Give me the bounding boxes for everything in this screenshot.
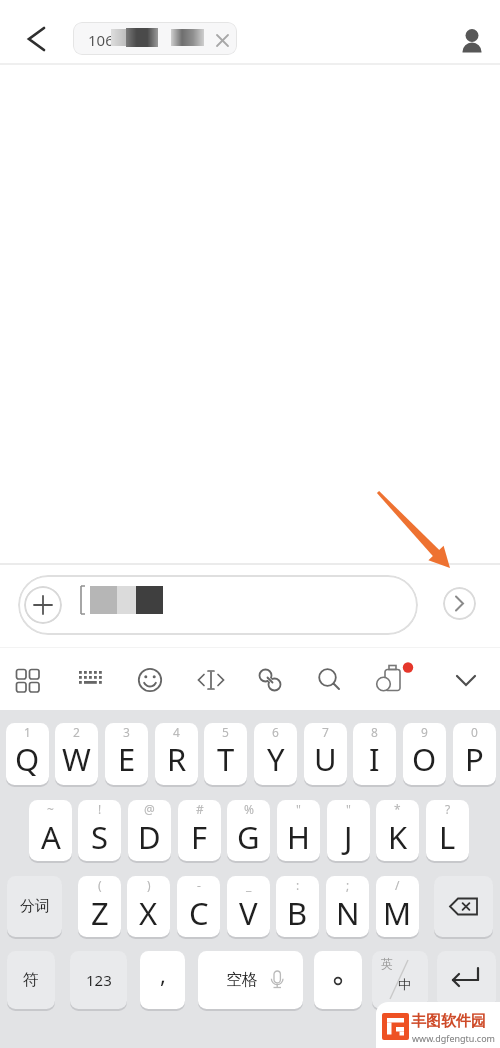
staticText: ( bbox=[98, 877, 102, 893]
button[interactable]: 123 bbox=[70, 951, 127, 1009]
button[interactable]: 8 bbox=[353, 723, 396, 785]
staticText: 符 bbox=[23, 970, 39, 990]
staticText: 2 bbox=[73, 724, 80, 740]
staticText: ~ bbox=[47, 801, 54, 817]
staticText: J bbox=[344, 816, 353, 858]
button[interactable]: # bbox=[178, 800, 221, 861]
staticText: 106 bbox=[88, 30, 114, 50]
button[interactable]: - bbox=[177, 876, 220, 937]
staticText: L bbox=[439, 816, 456, 858]
button[interactable] bbox=[309, 660, 349, 700]
button[interactable]: ! bbox=[78, 800, 121, 861]
button[interactable] bbox=[14, 660, 54, 700]
button[interactable] bbox=[24, 586, 62, 624]
button[interactable]: 7 bbox=[304, 723, 347, 785]
staticText: D bbox=[138, 816, 161, 858]
staticText: M bbox=[383, 892, 412, 934]
staticText: R bbox=[167, 738, 187, 780]
button[interactable] bbox=[443, 587, 476, 620]
button[interactable]: , bbox=[140, 951, 185, 1009]
button[interactable] bbox=[191, 660, 231, 700]
staticText: 1 bbox=[24, 724, 31, 740]
button[interactable]: 英 bbox=[372, 951, 428, 1009]
staticText: 丰图软件园 bbox=[411, 1012, 486, 1031]
button[interactable]: * bbox=[376, 800, 419, 861]
button[interactable] bbox=[18, 575, 418, 635]
staticText: F bbox=[191, 816, 208, 858]
staticText: S bbox=[91, 816, 109, 858]
button[interactable]: 6 bbox=[254, 723, 297, 785]
button[interactable]: ~ bbox=[29, 800, 72, 861]
button[interactable]: 0 bbox=[453, 723, 496, 785]
staticText: @ bbox=[144, 801, 155, 817]
staticText: " bbox=[296, 801, 301, 817]
button[interactable]: _ bbox=[227, 876, 270, 937]
button[interactable]: 3 bbox=[105, 723, 148, 785]
staticText: C bbox=[189, 892, 209, 934]
button[interactable]: 1 bbox=[6, 723, 49, 785]
staticText: Q bbox=[15, 738, 40, 780]
staticText: 5 bbox=[222, 724, 229, 740]
button[interactable]: ) bbox=[127, 876, 170, 937]
staticText: X bbox=[139, 892, 158, 934]
button[interactable]: 符 bbox=[7, 951, 55, 1009]
staticText: 英 bbox=[381, 956, 393, 971]
staticText: ) bbox=[147, 877, 151, 893]
button[interactable] bbox=[452, 16, 492, 56]
staticText: P bbox=[465, 738, 484, 780]
staticText: 123 bbox=[86, 970, 112, 990]
button[interactable]: 空格 bbox=[198, 951, 303, 1009]
staticText: W bbox=[62, 738, 91, 780]
staticText: 6 bbox=[272, 724, 279, 740]
staticText: ! bbox=[98, 801, 102, 817]
staticText: Y bbox=[267, 738, 285, 780]
staticText: Z bbox=[91, 892, 109, 934]
button[interactable] bbox=[314, 951, 362, 1009]
button[interactable]: 4 bbox=[155, 723, 198, 785]
button[interactable]: ; bbox=[326, 876, 369, 937]
staticText: " bbox=[346, 801, 351, 817]
button[interactable] bbox=[250, 660, 290, 700]
button[interactable]: @ bbox=[128, 800, 171, 861]
staticText: N bbox=[336, 892, 360, 934]
button[interactable] bbox=[71, 660, 111, 700]
staticText: V bbox=[239, 892, 258, 934]
staticText: 8 bbox=[371, 724, 378, 740]
button[interactable] bbox=[437, 951, 496, 1009]
staticText: ; bbox=[346, 877, 350, 893]
staticText: _ bbox=[246, 877, 252, 893]
button[interactable]: % bbox=[227, 800, 270, 861]
staticText: , bbox=[160, 959, 166, 989]
button[interactable]: 5 bbox=[204, 723, 247, 785]
staticText: - bbox=[197, 877, 201, 893]
staticText: G bbox=[237, 816, 260, 858]
staticText: 7 bbox=[322, 724, 329, 740]
staticText: / bbox=[395, 877, 400, 893]
staticText: T bbox=[217, 738, 235, 780]
staticText: U bbox=[314, 738, 337, 780]
staticText: www.dgfengtu.com bbox=[412, 1032, 496, 1044]
staticText: 3 bbox=[123, 724, 130, 740]
button[interactable] bbox=[130, 660, 170, 700]
button[interactable]: 9 bbox=[403, 723, 446, 785]
button[interactable] bbox=[374, 660, 414, 700]
button[interactable] bbox=[434, 876, 493, 937]
button[interactable]: ( bbox=[78, 876, 121, 937]
button[interactable]: / bbox=[376, 876, 419, 937]
staticText: 0 bbox=[471, 724, 478, 740]
button[interactable]: " bbox=[277, 800, 320, 861]
staticText: A bbox=[41, 816, 61, 858]
button[interactable]: " bbox=[327, 800, 370, 861]
button[interactable]: 106 bbox=[73, 22, 237, 55]
button[interactable]: ? bbox=[426, 800, 469, 861]
button[interactable] bbox=[446, 660, 486, 700]
button[interactable]: 2 bbox=[55, 723, 98, 785]
button[interactable] bbox=[20, 23, 52, 55]
staticText: B bbox=[287, 892, 308, 934]
button[interactable]: 分词 bbox=[7, 876, 62, 937]
staticText: E bbox=[118, 738, 136, 780]
staticText: % bbox=[244, 801, 254, 817]
button[interactable]: : bbox=[276, 876, 319, 937]
staticText: ? bbox=[445, 801, 451, 817]
staticText: * bbox=[394, 801, 401, 817]
